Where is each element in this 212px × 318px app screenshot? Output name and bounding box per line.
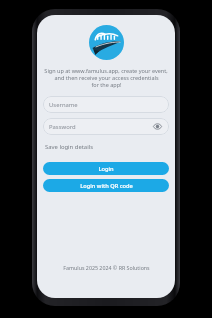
staticText: Famulus 2025 2024 © RR Solutions xyxy=(63,264,150,271)
staticText: for the app! xyxy=(91,81,122,88)
button[interactable]: Show password xyxy=(152,121,163,132)
button[interactable]: Login xyxy=(43,162,169,175)
staticText: Save login details xyxy=(45,143,94,151)
staticText: Username xyxy=(49,101,78,109)
staticText: Password xyxy=(49,123,76,131)
staticText: Login with QR code xyxy=(80,182,133,190)
button[interactable]: Save login details xyxy=(41,142,171,152)
button[interactable]: Password xyxy=(43,118,169,135)
other: Famulus logo xyxy=(89,25,124,60)
staticText: Login xyxy=(98,165,114,173)
staticText: and then receive your access credentials xyxy=(54,74,159,81)
staticText: Sign up at www.famulus.app, create your … xyxy=(44,67,168,74)
button[interactable]: Username xyxy=(43,96,169,113)
button[interactable]: Login with QR code xyxy=(43,179,169,192)
